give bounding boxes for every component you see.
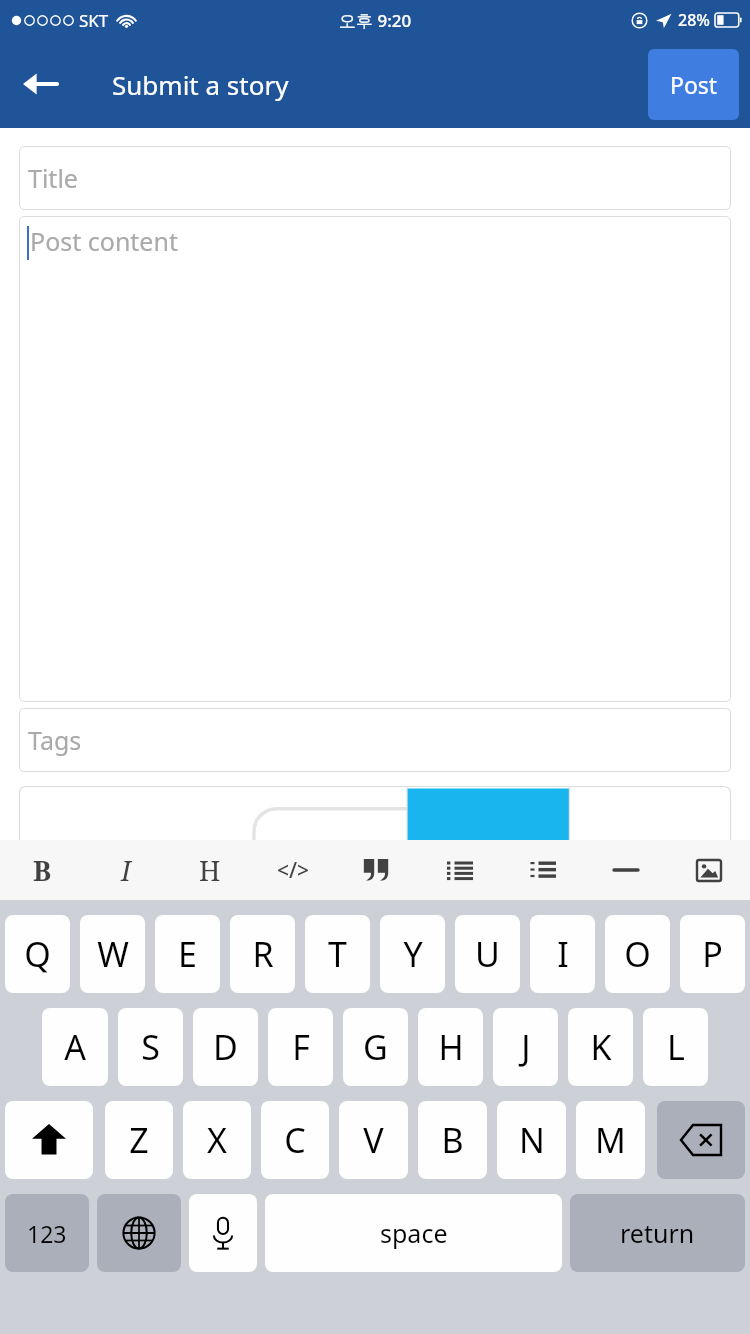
button[interactable]: Change language — [97, 1194, 181, 1272]
button[interactable]: N — [497, 1101, 566, 1179]
button[interactable]: G — [343, 1008, 408, 1086]
button[interactable]: M — [576, 1101, 645, 1179]
button[interactable]: I — [530, 915, 595, 993]
staticText: B — [33, 852, 52, 889]
staticText: F — [292, 1024, 310, 1070]
staticText: Submit a story — [112, 67, 289, 102]
button[interactable]: C — [261, 1101, 329, 1179]
button[interactable]: Italic — [84, 840, 168, 900]
button[interactable]: D — [193, 1008, 258, 1086]
staticText: B — [441, 1117, 464, 1163]
staticText: V — [363, 1117, 384, 1163]
staticText: J — [521, 1024, 531, 1070]
button[interactable]: Post content — [19, 216, 731, 702]
button[interactable]: P — [680, 915, 745, 993]
button[interactable]: Bulleted list — [418, 840, 501, 900]
button[interactable]: F — [268, 1008, 333, 1086]
button[interactable]: Post — [648, 49, 739, 120]
staticText: I — [121, 852, 131, 889]
button[interactable]: T — [305, 915, 370, 993]
staticText: Post — [670, 69, 718, 100]
button[interactable]: Shift — [5, 1101, 93, 1179]
button[interactable]: Q — [5, 915, 70, 993]
staticText: R — [252, 931, 274, 977]
staticText: Z — [129, 1117, 149, 1163]
staticText: space — [380, 1216, 448, 1250]
button[interactable]: Dictation — [189, 1194, 257, 1272]
staticText: I — [557, 931, 569, 977]
staticText: Y — [403, 931, 423, 977]
button[interactable]: Tags — [19, 708, 731, 772]
button[interactable]: K — [568, 1008, 633, 1086]
staticText: K — [590, 1024, 612, 1070]
staticText: Title — [28, 161, 78, 195]
button[interactable]: Bold — [0, 840, 84, 900]
button[interactable]: E — [155, 915, 220, 993]
button[interactable]: W — [80, 915, 145, 993]
staticText: M — [595, 1117, 626, 1163]
button[interactable]: Z — [105, 1101, 173, 1179]
staticText: U — [475, 931, 500, 977]
button[interactable]: R — [230, 915, 295, 993]
staticText: C — [284, 1117, 306, 1163]
staticText: E — [178, 931, 197, 977]
button[interactable]: L — [643, 1008, 708, 1086]
staticText: Post content — [30, 224, 178, 258]
button[interactable]: Title — [19, 146, 731, 210]
button[interactable]: Numbers — [5, 1194, 89, 1272]
button[interactable]: Horizontal rule — [584, 840, 667, 900]
button[interactable] — [19, 786, 731, 840]
staticText: X — [207, 1117, 227, 1163]
button[interactable]: S — [118, 1008, 183, 1086]
button[interactable]: V — [339, 1101, 408, 1179]
button[interactable]: U — [455, 915, 520, 993]
button[interactable]: B — [418, 1101, 487, 1179]
staticText: 28% — [678, 9, 710, 31]
staticText: return — [620, 1216, 695, 1250]
button[interactable]: Back — [14, 58, 66, 110]
button[interactable]: J — [493, 1008, 558, 1086]
button[interactable]: H — [418, 1008, 483, 1086]
staticText: 123 — [27, 1218, 67, 1249]
staticText: 오후 9:20 — [339, 9, 412, 32]
button[interactable]: Y — [380, 915, 445, 993]
button[interactable]: space — [265, 1194, 562, 1272]
staticText: O — [624, 931, 651, 977]
staticText: W — [97, 931, 129, 977]
staticText: G — [363, 1024, 388, 1070]
button[interactable]: Insert image — [667, 840, 750, 900]
staticText: SKT — [79, 9, 109, 32]
staticText: D — [213, 1024, 238, 1070]
button[interactable]: return — [570, 1194, 745, 1272]
button[interactable]: Heading — [168, 840, 252, 900]
staticText: L — [667, 1024, 685, 1070]
button[interactable]: Delete — [657, 1101, 745, 1179]
staticText: T — [328, 931, 347, 977]
button[interactable]: Code — [252, 840, 335, 900]
staticText: Tags — [28, 723, 82, 757]
button[interactable]: Numbered list — [501, 840, 584, 900]
button[interactable]: A — [42, 1008, 108, 1086]
button[interactable]: X — [183, 1101, 251, 1179]
staticText: Q — [24, 931, 51, 977]
staticText: </> — [277, 856, 310, 885]
staticText: H — [438, 1024, 464, 1070]
staticText: P — [702, 931, 723, 977]
staticText: H — [199, 852, 221, 889]
button[interactable]: O — [605, 915, 670, 993]
staticText: S — [141, 1024, 160, 1070]
button[interactable]: Quote — [335, 840, 418, 900]
staticText: A — [64, 1024, 86, 1070]
staticText: N — [519, 1117, 545, 1163]
